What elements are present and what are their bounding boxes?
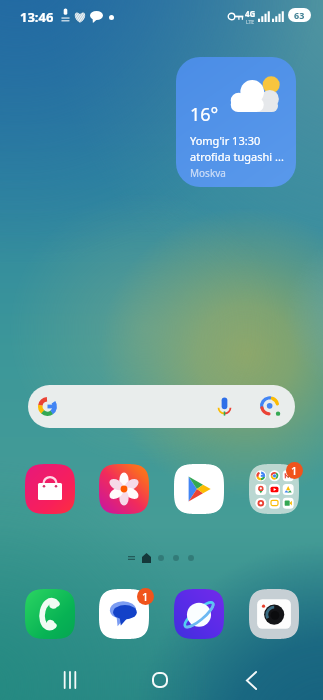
staticText: 16° <box>190 102 219 127</box>
button[interactable] <box>28 385 295 428</box>
button[interactable]: Phone <box>25 589 75 639</box>
button[interactable]: Back <box>227 660 275 700</box>
staticText: Moskva <box>190 166 226 180</box>
button[interactable]: Gallery <box>99 464 149 514</box>
button[interactable]: Galaxy Store <box>25 464 75 514</box>
button[interactable]: Recents <box>46 660 94 700</box>
staticText: 1 <box>291 463 298 478</box>
staticText: 4G <box>245 8 256 19</box>
staticText: LTE <box>246 19 255 26</box>
staticText: 13:46 <box>20 8 54 26</box>
staticText: Yomg'ir 13:30 <box>190 133 261 148</box>
button[interactable]: Google folder <box>249 464 299 514</box>
button[interactable]: Messages <box>99 589 149 639</box>
button[interactable]: Internet <box>174 589 224 639</box>
button[interactable]: 16° <box>176 57 296 187</box>
button[interactable]: Play Store <box>174 464 224 514</box>
button[interactable]: Camera <box>249 589 299 639</box>
staticText: atrofida tugashi ... <box>190 149 284 164</box>
button[interactable]: Home <box>136 660 184 700</box>
staticText: 63 <box>294 9 305 21</box>
staticText: 1 <box>142 589 149 604</box>
